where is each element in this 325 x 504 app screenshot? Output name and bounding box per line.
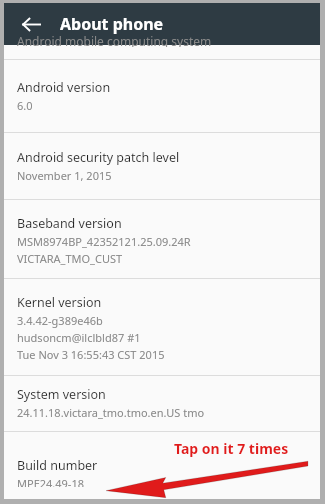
button[interactable]: Navigate up	[14, 7, 48, 41]
staticText: MSM8974BP_42352121.25.09.24R	[17, 234, 191, 249]
staticText: About phone	[60, 13, 164, 35]
staticText: Android security patch level	[17, 149, 180, 166]
staticText: Android version	[17, 79, 111, 96]
staticText: System version	[17, 386, 106, 403]
button[interactable]: Baseband version	[4, 200, 320, 278]
staticText: 3.4.42-g389e46b	[17, 313, 103, 328]
staticText: Baseband version	[17, 215, 122, 232]
staticText: Kernel version	[17, 294, 102, 311]
button[interactable]: Android version	[4, 60, 320, 132]
button[interactable]: Kernel version	[4, 279, 320, 375]
staticText: 6.0	[17, 98, 33, 113]
staticText: November 1, 2015	[17, 168, 112, 183]
staticText: MPE24.49-18	[17, 476, 84, 487]
staticText: 24.11.18.victara_tmo.tmo.en.US tmo	[17, 405, 205, 420]
staticText: Tap on it 7 times	[174, 439, 289, 458]
button[interactable]: Android mobile computing system	[4, 45, 320, 59]
staticText: Build number	[17, 457, 98, 474]
button[interactable]: System version	[4, 376, 320, 431]
button[interactable]: Android security patch level	[4, 133, 320, 199]
staticText: Tue Nov 3 16:55:43 CST 2015	[17, 347, 165, 362]
staticText: VICTARA_TMO_CUST	[17, 251, 123, 266]
button[interactable]: Build number	[4, 432, 320, 499]
staticText: hudsoncm@ilclbld87 #1	[17, 330, 141, 345]
staticText: Android mobile computing system	[17, 33, 212, 47]
